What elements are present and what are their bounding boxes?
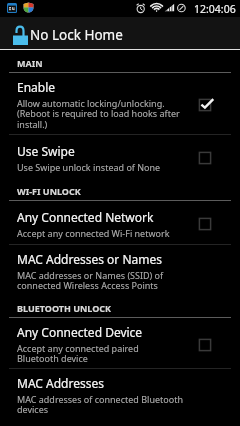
button[interactable]: Use Swipe [0,135,240,178]
button[interactable]: Toggle [186,141,224,175]
staticText: Accept any connected paired Bluetooth de… [17,342,139,365]
staticText: Use Swipe [17,143,75,159]
button[interactable]: Toggle [186,88,224,122]
staticText: MAC Addresses or Names [17,251,162,267]
staticText: 12:04:06 [194,2,236,16]
staticText: Any Connected Device [17,324,143,340]
button[interactable]: No Lock Home [0,17,240,49]
button[interactable]: Toggle [186,328,224,362]
button[interactable]: Any Connected Device [0,318,240,369]
staticText: MAIN [17,57,43,69]
staticText: MAC addresses or Names (SSID) of connect… [17,269,164,292]
staticText: Any Connected Network [17,209,154,225]
staticText: BLUETOOTH UNLOCK [17,302,112,314]
staticText: WI-FI UNLOCK [17,185,81,197]
staticText: MAC Addresses [17,375,104,391]
staticText: Enable [17,79,56,95]
button[interactable]: MAC Addresses [0,369,240,419]
button[interactable]: Any Connected Network [0,201,240,245]
staticText: Accept any connected Wi-Fi network [17,227,170,239]
button[interactable]: Toggle [186,207,224,241]
staticText: Allow automatic locking/unlocking. (Rebo… [17,97,180,131]
button[interactable]: Enable [0,73,240,135]
staticText: MAC addresses of connected Bluetooth dev… [17,393,183,416]
button[interactable]: MAC Addresses or Names [0,245,240,295]
staticText: No Lock Home [30,26,123,44]
staticText: Use Swipe unlock instead of None [17,161,161,173]
